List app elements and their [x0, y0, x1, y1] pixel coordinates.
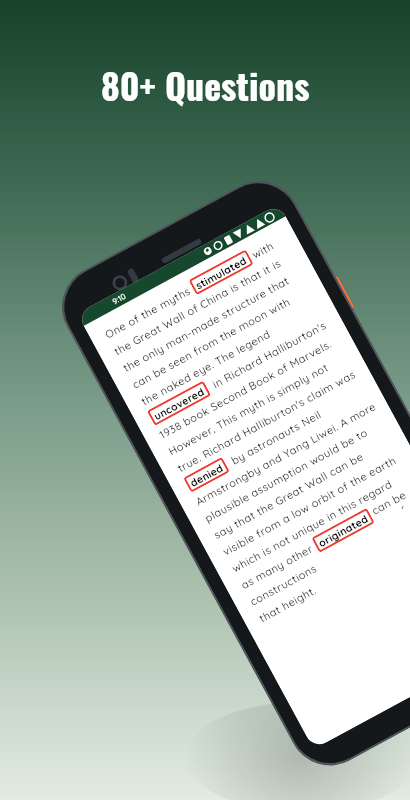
- staticText: the only man-made structure that: [121, 273, 292, 375]
- button[interactable]: stimulated: [193, 253, 249, 291]
- staticText: in Richard Halliburton's: [204, 318, 329, 394]
- button[interactable]: denied: [188, 460, 225, 489]
- staticText: the naked eye. The legend: [139, 327, 273, 408]
- staticText: visible from a low orbit of the earth: [220, 453, 399, 559]
- staticText: plausible assumption would be to: [202, 425, 371, 525]
- staticText: by astronauts Neil: [223, 407, 324, 471]
- staticText: with: [247, 239, 276, 263]
- staticText: that height.: [257, 583, 319, 625]
- staticText: stimulated: [193, 253, 249, 291]
- staticText: However, This myth is simply not: [166, 360, 331, 458]
- staticText: true. Richard Halliburton's claim was: [175, 367, 358, 475]
- staticText: can be seen from the moon with: [130, 294, 293, 392]
- staticText: 9:10: [110, 290, 128, 306]
- staticText: Armstrongby and Yang Liwei. A more: [193, 399, 379, 508]
- staticText: 1938 book Second Book of Marvels.: [157, 337, 334, 442]
- staticText: uncovered: [151, 384, 207, 422]
- staticText: the Great Wall of China is that it is: [111, 256, 283, 358]
- staticText: denied: [188, 460, 225, 489]
- staticText: originated: [316, 511, 370, 549]
- staticText: 80+ Questions: [101, 58, 310, 111]
- staticText: constructions: [247, 561, 319, 609]
- staticText: can be seen from: [366, 475, 410, 524]
- staticText: as many other: [238, 540, 319, 592]
- button[interactable]: originated: [316, 511, 370, 549]
- button[interactable]: uncovered: [151, 384, 207, 422]
- staticText: say that the Great Wall can be: [211, 449, 366, 542]
- staticText: which is not unique in this regard: [229, 477, 395, 575]
- staticText: One of the myths: [102, 282, 196, 342]
